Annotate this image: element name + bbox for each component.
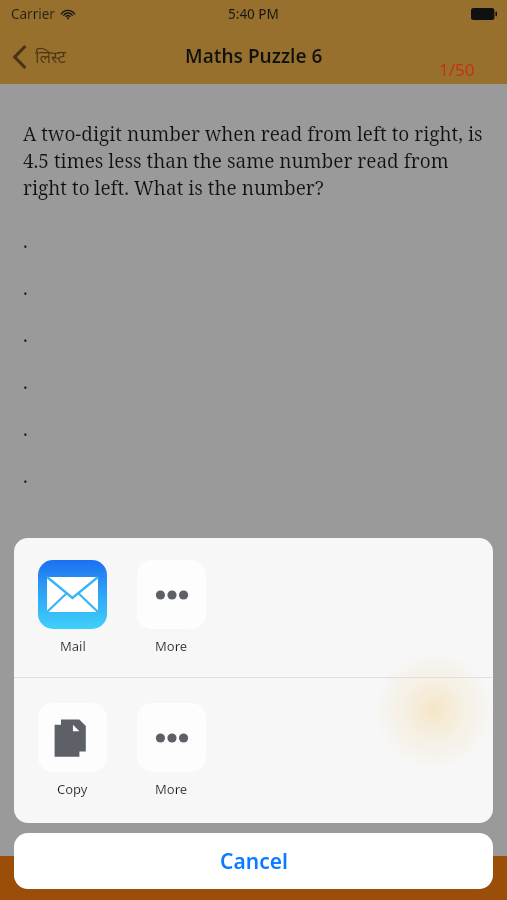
staticText: लिस्ट [35, 45, 67, 68]
button[interactable]: Next [338, 856, 507, 900]
staticText: . [23, 322, 28, 348]
button[interactable]: More [133, 556, 210, 659]
button[interactable]: More [133, 699, 210, 802]
staticText: . [23, 275, 28, 301]
staticText: . [23, 228, 28, 254]
button[interactable]: 1/50 [439, 58, 507, 84]
button[interactable]: Cancel [14, 833, 493, 889]
staticText: . [23, 463, 28, 489]
staticText: . [23, 369, 28, 395]
staticText: Maths Puzzle 6 [185, 43, 323, 69]
staticText: More [155, 780, 188, 798]
staticText: Carrier [11, 5, 55, 23]
staticText: Copy [57, 780, 88, 798]
staticText: 5:40 PM [228, 5, 279, 23]
button[interactable]: Previous [0, 856, 169, 900]
staticText: A two-digit number when read from left t… [23, 121, 487, 201]
button[interactable]: Copy [34, 699, 111, 802]
staticText: Cancel [220, 847, 288, 876]
button[interactable]: Down [169, 856, 338, 900]
button[interactable]: Mail [34, 556, 111, 659]
staticText: More [155, 637, 188, 655]
staticText: Mail [60, 637, 86, 655]
button[interactable]: लिस्ट [0, 37, 77, 76]
staticText: . [23, 416, 28, 442]
